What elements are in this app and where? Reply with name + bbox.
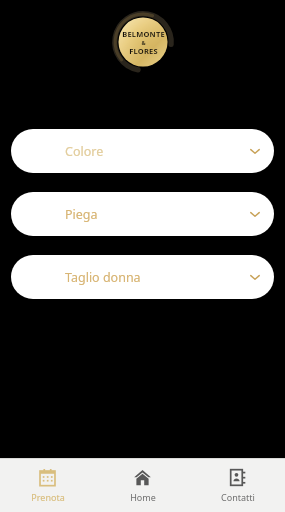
other: Belmonte & Flores logo [112,11,174,73]
staticText: BELMONTE [122,29,165,39]
staticText: Colore [65,143,104,160]
staticText: Contatti [221,491,255,503]
staticText: & [141,39,146,46]
staticText: Piega [65,206,98,223]
button[interactable]: Piega [11,192,274,236]
button[interactable]: Colore [11,129,274,173]
button[interactable]: Prenota [0,459,95,512]
staticText: Home [130,491,156,503]
staticText: Taglio donna [65,269,141,286]
button[interactable]: Home [95,459,190,512]
button[interactable]: Taglio donna [11,255,274,299]
staticText: Prenota [31,491,65,503]
staticText: FLORES [129,46,158,56]
button[interactable]: Contatti [190,459,285,512]
